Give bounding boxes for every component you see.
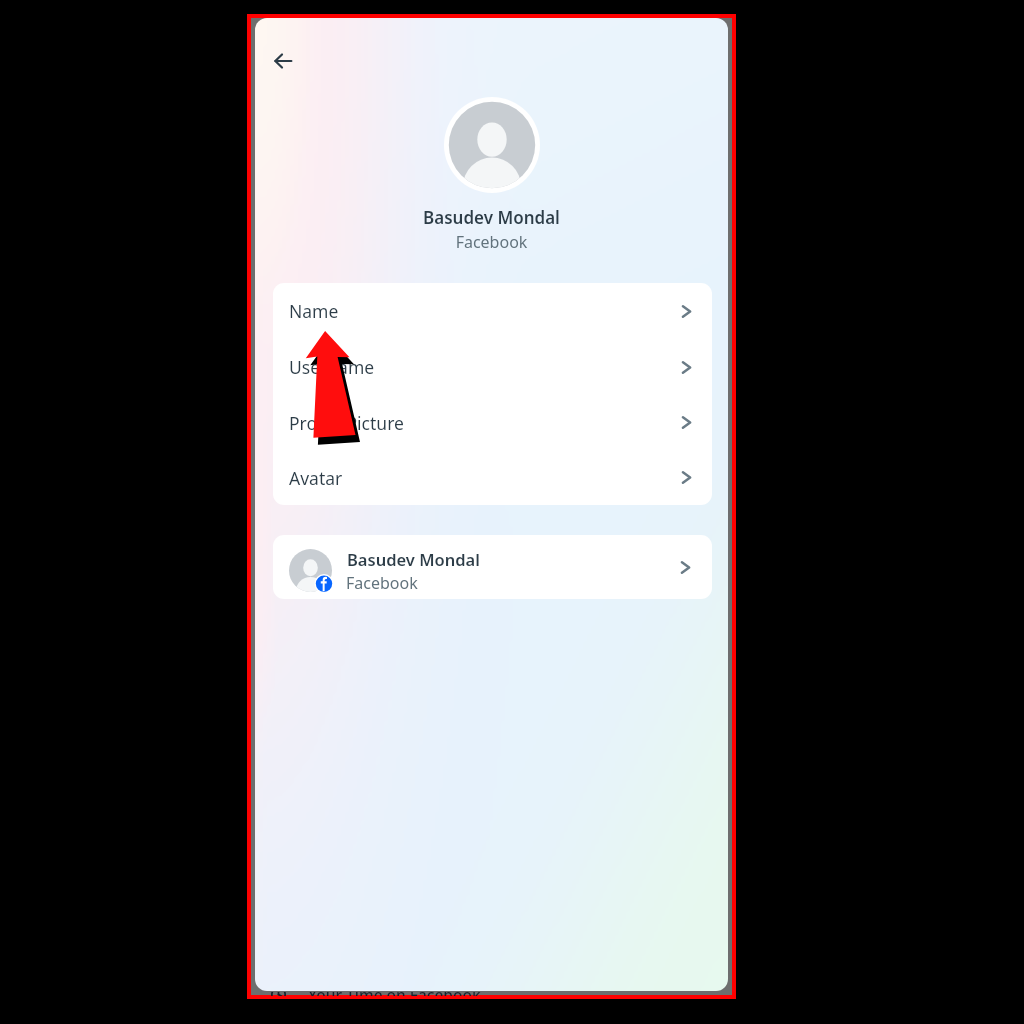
staticText: Facebook <box>346 572 418 594</box>
staticText: Basudev Mondal <box>255 206 728 229</box>
button[interactable]: Name <box>273 283 712 339</box>
button[interactable]: Basudev Mondal <box>273 535 712 599</box>
button[interactable]: Username <box>273 339 712 395</box>
staticText: Basudev Mondal <box>347 548 480 570</box>
staticText: Username <box>289 355 375 379</box>
staticText: Avatar <box>289 466 343 490</box>
button[interactable]: Avatar <box>273 450 712 505</box>
staticText: Facebook <box>255 231 728 253</box>
button[interactable]: Profile Picture <box>273 395 712 450</box>
staticText: Name <box>289 299 339 323</box>
staticText: Your Time on Facebook <box>308 992 481 996</box>
staticText: Profile Picture <box>289 411 404 435</box>
button[interactable]: Back <box>255 28 316 94</box>
